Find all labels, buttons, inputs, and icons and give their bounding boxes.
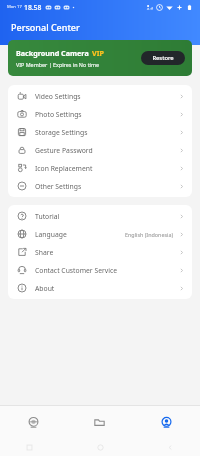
staticText: Background Camera: [16, 48, 89, 58]
button[interactable]: Photo Settings: [8, 105, 192, 123]
button[interactable]: Storage Settings: [8, 123, 192, 141]
staticText: Mon 17: [7, 4, 22, 10]
button[interactable]: Tutorial: [8, 207, 192, 225]
staticText: Personal Center: [11, 21, 80, 33]
staticText: Share: [35, 248, 54, 257]
staticText: Tutorial: [35, 212, 60, 221]
button[interactable]: Camera: [0, 406, 66, 439]
staticText: Storage Settings: [35, 128, 88, 137]
staticText: Restore: [152, 54, 174, 62]
button[interactable]: Video Settings: [8, 87, 192, 105]
button[interactable]: Background Camera: [8, 40, 192, 76]
staticText: VIP: [92, 48, 104, 58]
button[interactable]: Other Settings: [8, 177, 192, 195]
button[interactable]: Gesture Password: [8, 141, 192, 159]
button[interactable]: About: [8, 279, 192, 297]
button[interactable]: Icon Replacement: [8, 159, 192, 177]
staticText: Contact Customer Service: [35, 266, 118, 275]
button[interactable]: Contact Customer Service: [8, 261, 192, 279]
staticText: Photo Settings: [35, 110, 82, 119]
button[interactable]: Files: [66, 406, 133, 439]
staticText: Video Settings: [35, 92, 81, 101]
button[interactable]: Personal Center: [133, 406, 200, 439]
button[interactable]: Share: [8, 243, 192, 261]
staticText: 18.58: [24, 3, 42, 12]
staticText: Other Settings: [35, 182, 82, 191]
staticText: VIP Member | Expires in No time: [16, 61, 100, 68]
staticText: English (Indonesia): [125, 231, 174, 238]
button[interactable]: Language: [8, 225, 192, 243]
staticText: About: [35, 284, 55, 293]
staticText: Language: [35, 230, 67, 239]
button[interactable]: Restore: [141, 51, 185, 65]
staticText: Gesture Password: [35, 146, 93, 155]
staticText: Icon Replacement: [35, 164, 93, 173]
